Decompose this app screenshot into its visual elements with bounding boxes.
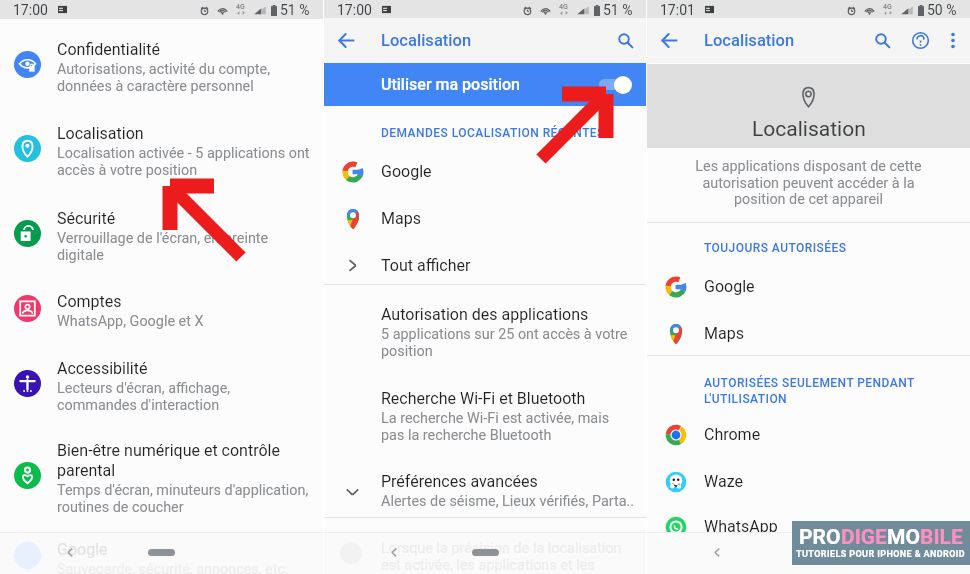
button[interactable]: Recherche Wi-Fi et Bluetooth <box>324 389 646 444</box>
button[interactable]: Comptes <box>0 292 323 330</box>
button[interactable]: Google <box>647 263 970 310</box>
staticText: 5 applications sur 25 ont accès à votre … <box>381 326 628 360</box>
staticText: 4G <box>559 3 568 11</box>
staticText: DIGE <box>841 525 887 550</box>
staticText: Accessibilité <box>57 359 148 378</box>
staticText: WhatsApp, Google et X <box>57 313 204 330</box>
button[interactable]: Rechercher <box>863 18 901 63</box>
button[interactable]: Retour <box>710 545 725 560</box>
staticText: Autorisations, activité du compte, donné… <box>57 61 271 95</box>
staticText: Utiliser ma position <box>381 75 599 94</box>
staticText: Google <box>704 277 755 296</box>
staticText: Maps <box>704 324 744 343</box>
button[interactable]: Retour <box>647 18 691 63</box>
staticText: Verrouillage de l'écran, empreinte digit… <box>57 230 269 264</box>
staticText: Localisation <box>752 117 866 142</box>
button[interactable]: Google <box>324 148 646 195</box>
button[interactable]: Autorisation des applications <box>324 305 646 360</box>
staticText: TUTORIELS POUR IPHONE & ANDROID <box>796 549 966 560</box>
button[interactable]: Préférences avancées <box>324 472 646 510</box>
staticText: WhatsApp <box>704 517 778 536</box>
staticText: Confidentialité <box>57 40 160 59</box>
staticText: Alertes de séisme, Lieux vérifiés, Parta… <box>381 493 635 510</box>
staticText: Localisation <box>704 31 795 50</box>
staticText: Maps <box>381 209 421 228</box>
button[interactable]: Maps <box>324 195 646 242</box>
staticText: BILE <box>920 525 963 550</box>
staticText: 51 % <box>603 2 633 18</box>
button[interactable]: Rechercher <box>604 18 646 63</box>
button[interactable]: Confidentialité <box>0 40 323 95</box>
staticText: AUTORISÉES SEULEMENT PENDANT L'UTILISATI… <box>704 376 915 406</box>
button[interactable]: Maps <box>647 310 970 357</box>
staticText: Recherche Wi-Fi et Bluetooth <box>381 389 586 408</box>
staticText: Lorsque la précision de la localisation … <box>381 540 622 574</box>
button[interactable]: WhatsApp <box>647 503 970 550</box>
staticText: 4G <box>883 3 892 11</box>
staticText: Préférences avancées <box>381 472 538 491</box>
button[interactable]: Tout afficher <box>324 242 646 289</box>
staticText: 17:01 <box>660 2 695 18</box>
staticText: Temps d'écran, minuteurs d'application, … <box>57 482 309 516</box>
staticText: La recherche Wi-Fi est activée, mais pas… <box>381 410 610 444</box>
button[interactable]: Sécurité <box>0 209 323 264</box>
staticText: Tout afficher <box>381 256 471 275</box>
staticText: Autorisation des applications <box>381 305 589 324</box>
button[interactable]: Accessibilité <box>0 359 323 414</box>
staticText: 50 % <box>927 2 957 18</box>
staticText: Sauvegarde, sécurité, annonces, etc. <box>57 561 289 574</box>
staticText: Localisation <box>381 31 472 50</box>
staticText: Waze <box>704 472 743 491</box>
staticText: Lecteurs d'écran, affichage, commandes d… <box>57 380 231 414</box>
staticText: O <box>826 525 841 550</box>
button[interactable]: Retour <box>63 545 78 560</box>
staticText: 17:00 <box>337 2 372 18</box>
button[interactable]: Retour <box>387 545 402 560</box>
staticText: Localisation activée - 5 applications on… <box>57 145 310 179</box>
staticText: PR <box>799 525 826 550</box>
staticText: Google <box>57 540 108 559</box>
button[interactable]: Localisation <box>0 124 323 179</box>
button[interactable]: Plus d'options <box>939 18 970 63</box>
staticText: 17:00 <box>13 2 48 18</box>
staticText: 51 % <box>280 2 310 18</box>
button[interactable]: Retour <box>324 18 368 63</box>
staticText: Google <box>381 162 432 181</box>
button[interactable]: Aide <box>901 18 939 63</box>
staticText: DEMANDES LOCALISATION RÉCENTES <box>381 126 605 140</box>
staticText: Chrome <box>704 425 761 444</box>
staticText: Comptes <box>57 292 122 311</box>
staticText: TOUJOURS AUTORISÉES <box>704 241 847 255</box>
staticText: MO <box>887 525 920 550</box>
button[interactable]: Waze <box>647 458 970 505</box>
staticText: Localisation <box>57 124 144 143</box>
staticText: Les applications disposant de cette auto… <box>661 158 956 207</box>
staticText: Bien-être numérique et contrôle parental <box>57 441 280 480</box>
button[interactable]: Chrome <box>647 411 970 458</box>
button[interactable]: Bien-être numérique et contrôle parental <box>0 441 323 516</box>
staticText: Sécurité <box>57 209 116 228</box>
staticText: 4G <box>236 3 245 11</box>
button[interactable]: Utiliser ma position <box>324 63 646 106</box>
